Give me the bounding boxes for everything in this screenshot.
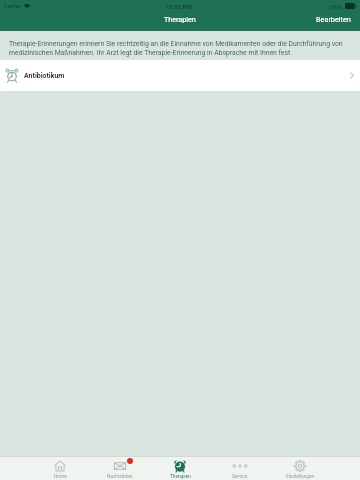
staticText: Carrier <box>4 3 21 10</box>
staticText: Einstellungen <box>286 474 314 480</box>
button[interactable]: Antibiotikum <box>0 60 360 91</box>
staticText: 100% <box>328 3 343 10</box>
button[interactable]: Nachrichten <box>90 457 150 480</box>
button[interactable]: Einstellungen <box>270 457 330 480</box>
button[interactable]: Home <box>30 457 90 480</box>
staticText: Home <box>54 474 67 480</box>
button[interactable]: Service <box>210 457 270 480</box>
staticText: Therapien <box>170 474 191 480</box>
staticText: Antibiotikum <box>24 72 65 80</box>
staticText: Therapie-Erinnerungen erinnern Sie recht… <box>9 40 354 57</box>
staticText: Service <box>232 474 248 480</box>
button[interactable]: Therapien <box>150 457 210 480</box>
staticText: Nachrichten <box>107 474 133 480</box>
staticText: Therapien <box>164 15 196 23</box>
button[interactable]: Bearbeiten <box>307 11 360 28</box>
staticText: 12:02 PM <box>166 3 192 10</box>
staticText: Bearbeiten <box>316 15 351 24</box>
